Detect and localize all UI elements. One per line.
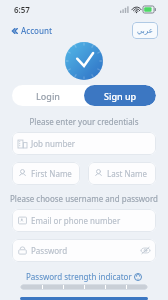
- staticText: Email or phone number: [31, 215, 150, 226]
- staticText: Sign up: [104, 90, 137, 102]
- staticText: Password strength indicator: [26, 271, 132, 282]
- button[interactable]: First Name: [12, 162, 80, 185]
- staticText: Please choose username and password: [0, 193, 168, 204]
- other: Help: [134, 273, 142, 281]
- staticText: Please enter your credentials: [0, 116, 168, 127]
- button[interactable]: Login: [12, 85, 84, 106]
- button[interactable]: Job number: [12, 132, 156, 155]
- button[interactable]: Next: [20, 297, 148, 300]
- staticText: Last Name: [107, 168, 150, 179]
- staticText: 6:57: [14, 4, 30, 15]
- staticText: عربي: [137, 27, 153, 35]
- button[interactable]: Last Name: [88, 162, 156, 185]
- button[interactable]: Sign up: [84, 85, 156, 106]
- button[interactable]: Password strength indicator: [26, 271, 142, 282]
- button[interactable]: عربي: [132, 22, 158, 39]
- button[interactable]: Password: [12, 239, 156, 262]
- button[interactable]: Email or phone number: [12, 209, 156, 232]
- staticText: Job number: [31, 138, 150, 149]
- button[interactable]: Show password: [141, 246, 150, 255]
- staticText: Account: [21, 25, 53, 36]
- staticText: Password: [31, 245, 141, 256]
- button[interactable]: Account: [6, 22, 57, 39]
- staticText: Login: [36, 90, 60, 102]
- staticText: First Name: [31, 168, 74, 179]
